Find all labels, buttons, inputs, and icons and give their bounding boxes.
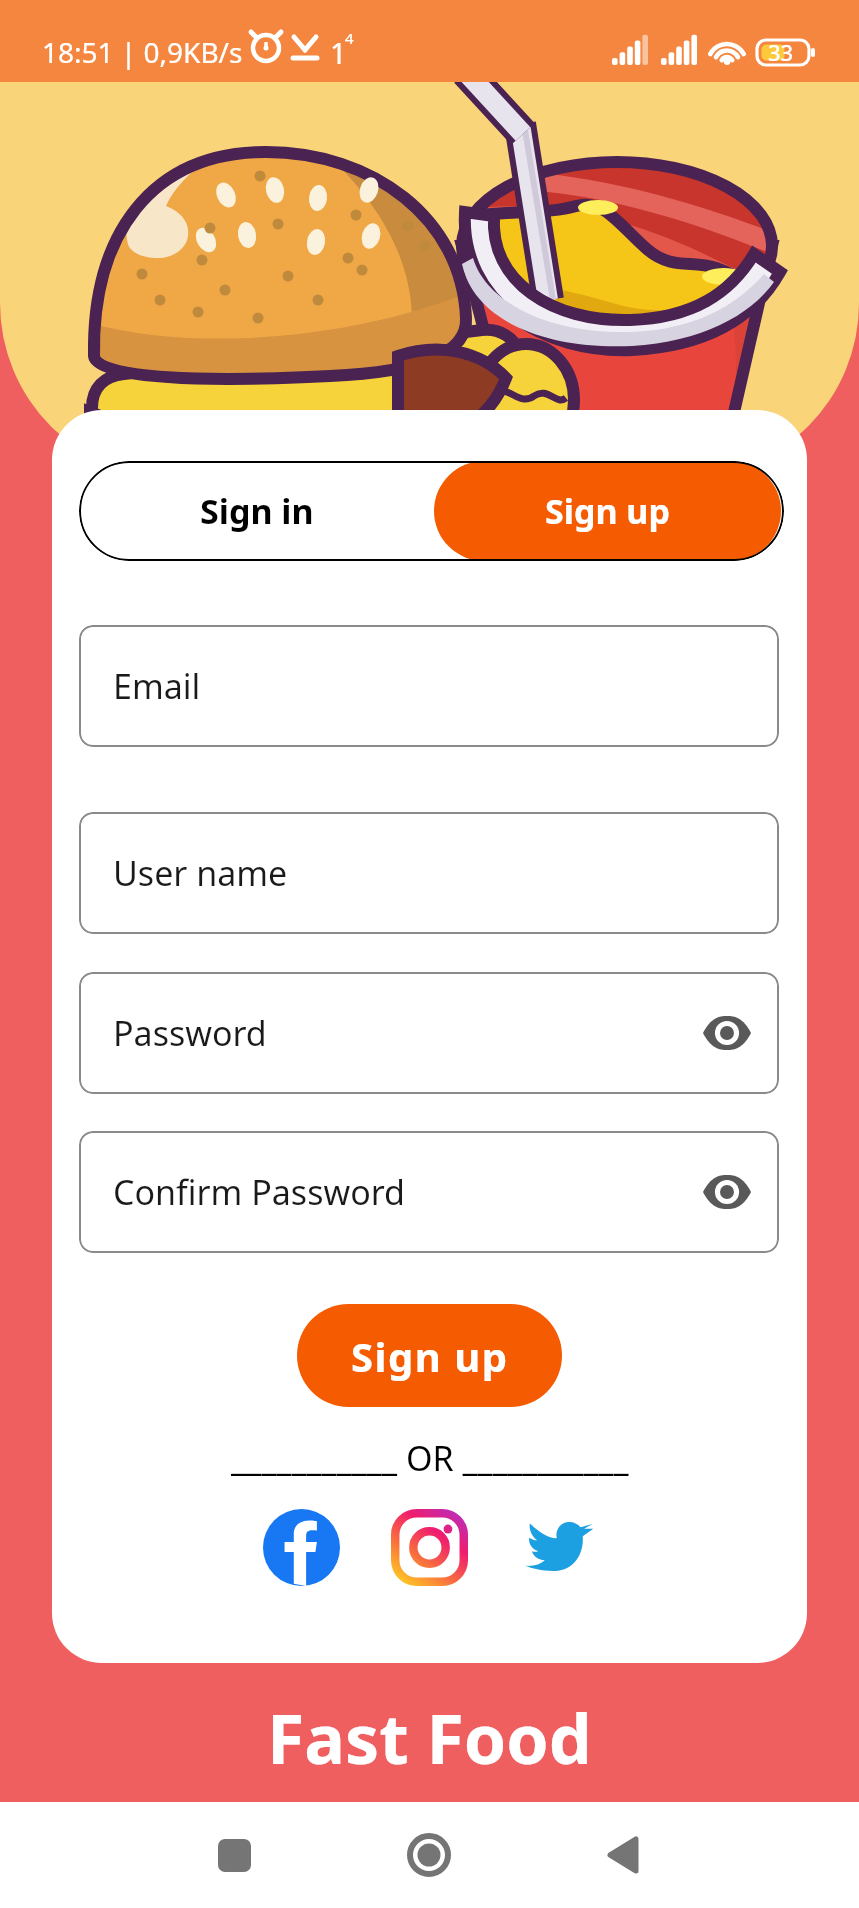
- staticText: 4: [345, 28, 354, 48]
- button[interactable]: Sign up: [434, 461, 781, 561]
- staticText: ___________ OR ___________: [231, 1435, 629, 1481]
- staticText: Sign in: [200, 488, 314, 534]
- staticText: 1: [330, 33, 347, 72]
- button[interactable]: Recents: [174, 1802, 294, 1908]
- button[interactable]: Twitter: [519, 1509, 596, 1586]
- button[interactable]: Back: [563, 1802, 683, 1908]
- staticText: 33: [768, 37, 794, 67]
- staticText: Password: [113, 1010, 267, 1056]
- staticText: Sign up: [351, 1329, 509, 1383]
- staticText: Sign up: [545, 488, 670, 534]
- staticText: 18:51 | 0,9KB/s: [42, 33, 243, 71]
- staticText: User name: [113, 850, 288, 896]
- staticText: Email: [113, 663, 201, 709]
- button[interactable]: Sign in: [79, 461, 434, 561]
- button[interactable]: Sign up: [297, 1304, 562, 1407]
- button[interactable]: Email: [79, 625, 779, 747]
- staticText: Confirm Password: [113, 1169, 405, 1215]
- staticText: Fast Food: [267, 1691, 592, 1784]
- button[interactable]: Facebook: [263, 1509, 340, 1586]
- button[interactable]: Instagram: [391, 1509, 468, 1586]
- button[interactable]: Password: [79, 972, 779, 1094]
- button[interactable]: Confirm Password: [79, 1131, 779, 1253]
- button[interactable]: User name: [79, 812, 779, 934]
- button[interactable]: Home: [369, 1802, 489, 1908]
